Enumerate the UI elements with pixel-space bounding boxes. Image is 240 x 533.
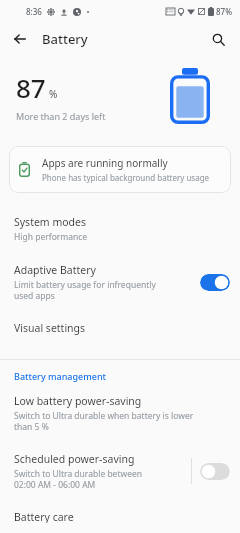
staticText: Battery bbox=[42, 30, 88, 48]
staticText: Battery management bbox=[14, 370, 106, 382]
staticText: Apps are running normally bbox=[42, 156, 168, 170]
staticText: More than 2 days left bbox=[16, 110, 106, 122]
staticText: Phone has typical background battery usa… bbox=[42, 172, 210, 183]
staticText: Adaptive Battery bbox=[14, 263, 96, 277]
button[interactable]: Scheduled power-saving toggle bbox=[200, 463, 230, 480]
staticText: Visual settings bbox=[14, 321, 86, 335]
button[interactable]: Search bbox=[204, 25, 232, 53]
button[interactable]: Adaptive Battery bbox=[0, 253, 240, 311]
staticText: System modes bbox=[14, 215, 86, 229]
staticText: High performance bbox=[14, 231, 88, 243]
staticText: 87 bbox=[16, 70, 46, 105]
button[interactable]: System modes bbox=[0, 205, 240, 253]
button[interactable]: Back bbox=[6, 25, 34, 53]
staticText: Low battery power-saving bbox=[14, 394, 142, 408]
staticText: 87% bbox=[216, 6, 232, 17]
button[interactable]: Battery care bbox=[0, 500, 240, 533]
staticText: Battery care bbox=[14, 510, 74, 523]
staticText: Switch to Ultra durable between 02:00 AM… bbox=[14, 468, 142, 490]
button[interactable]: Scheduled power-saving bbox=[0, 442, 240, 500]
button[interactable]: Visual settings bbox=[0, 311, 240, 345]
staticText: % bbox=[49, 87, 58, 101]
button[interactable]: Low battery power-saving bbox=[0, 384, 240, 442]
staticText: Scheduled power-saving bbox=[14, 452, 135, 466]
button[interactable]: Adaptive Battery toggle bbox=[200, 274, 230, 291]
staticText: Switch to Ultra durable when battery is … bbox=[14, 410, 194, 432]
staticText: 8:36 bbox=[26, 6, 42, 17]
button[interactable]: Apps are running normally bbox=[9, 146, 231, 193]
staticText: Limit battery usage for infrequently use… bbox=[14, 279, 156, 301]
